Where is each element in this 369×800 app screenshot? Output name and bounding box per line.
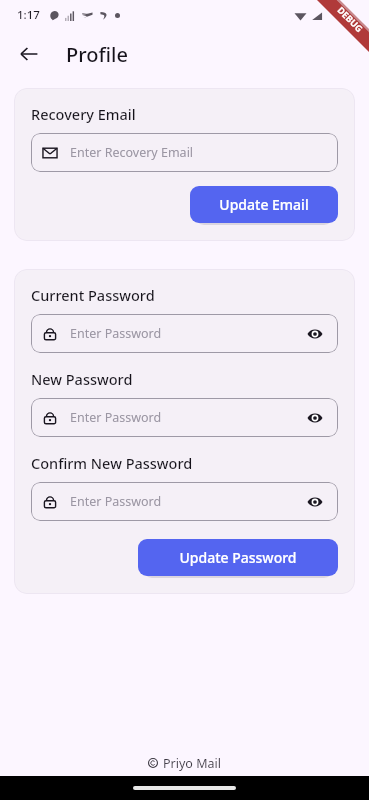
staticText: Profile (66, 41, 128, 68)
button[interactable]: Back (12, 37, 46, 71)
staticText: 1:17 (17, 7, 40, 23)
button[interactable]: Show password (303, 322, 327, 346)
staticText: Confirm New Password (31, 453, 193, 473)
staticText: Update Email (219, 195, 309, 214)
button[interactable]: Update Password (138, 539, 338, 576)
button[interactable]: Enter Recovery Email (31, 133, 338, 172)
staticText: Priyo Mail (163, 755, 221, 772)
staticText: New Password (31, 369, 133, 389)
staticText: DEBUG (335, 4, 366, 34)
staticText: Current Password (31, 285, 155, 305)
button[interactable]: Enter Password (31, 482, 338, 521)
staticText: Enter Recovery Email (70, 144, 327, 161)
button[interactable]: Enter Password (31, 398, 338, 437)
button[interactable]: Update Email (190, 186, 338, 223)
button[interactable]: Show password (303, 406, 327, 430)
staticText: Enter Password (70, 325, 303, 342)
staticText: Update Password (179, 548, 297, 567)
button[interactable]: Enter Password (31, 314, 338, 353)
staticText: Enter Password (70, 409, 303, 426)
button[interactable]: Show password (303, 490, 327, 514)
staticText: Recovery Email (31, 104, 136, 124)
staticText: Enter Password (70, 493, 303, 510)
